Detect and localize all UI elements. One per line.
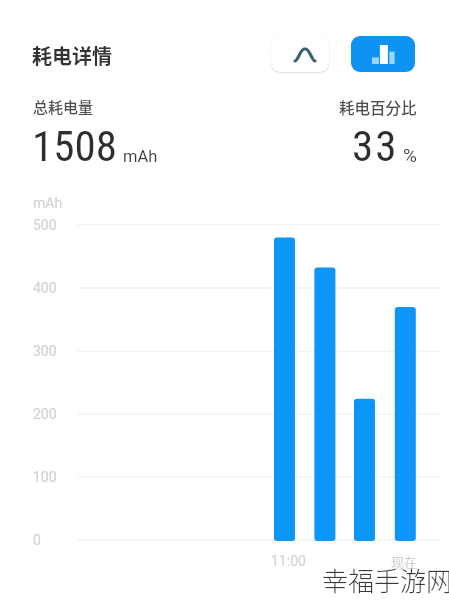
- staticText: 200: [33, 406, 57, 422]
- staticText: 现在: [391, 552, 418, 571]
- staticText: 耗电详情: [32, 41, 112, 70]
- staticText: 1508: [32, 121, 117, 171]
- button[interactable]: Line chart view: [271, 36, 329, 72]
- staticText: mAh: [33, 195, 63, 211]
- staticText: mAh: [123, 147, 158, 166]
- staticText: 500: [33, 217, 57, 233]
- staticText: 11:00: [271, 553, 306, 569]
- staticText: 300: [33, 343, 57, 359]
- staticText: 总耗电量: [33, 96, 94, 118]
- staticText: %: [403, 144, 417, 166]
- staticText: 33: [352, 121, 399, 171]
- button[interactable]: Bar chart view: [351, 36, 415, 72]
- staticText: 0: [33, 532, 41, 548]
- staticText: 幸福手游网: [322, 561, 449, 599]
- staticText: 耗电百分比: [339, 96, 417, 118]
- staticText: 400: [33, 280, 57, 296]
- staticText: 100: [33, 469, 57, 485]
